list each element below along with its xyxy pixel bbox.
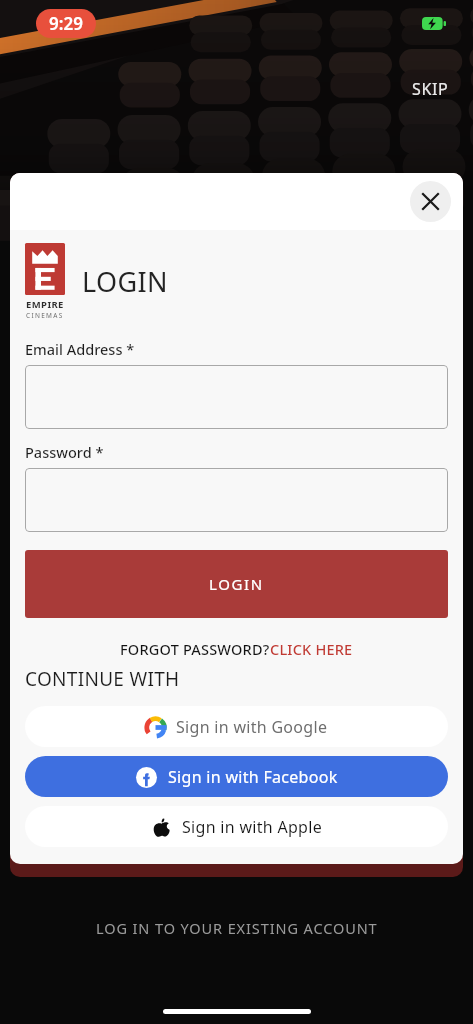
other: Battery charging: [422, 17, 446, 30]
button[interactable]: Sign in with Apple: [25, 806, 448, 847]
button[interactable]: [25, 365, 448, 429]
staticText: LOGIN: [209, 574, 264, 594]
staticText: FORGOT PASSWORD?: [120, 639, 270, 659]
button[interactable]: Sign in with Facebook: [25, 756, 448, 797]
staticText: CONTINUE WITH: [25, 666, 180, 692]
button[interactable]: SKIP: [406, 72, 455, 106]
button[interactable]: CLICK HERE: [270, 639, 353, 659]
staticText: Sign in with Google: [176, 716, 328, 738]
staticText: SKIP: [412, 78, 449, 100]
button[interactable]: [25, 468, 448, 532]
staticText: LOG IN TO YOUR EXISTING ACCOUNT: [96, 918, 378, 938]
staticText: EMPIRE: [26, 298, 64, 311]
staticText: 9:29: [49, 12, 83, 35]
staticText: CINEMAS: [26, 311, 64, 320]
staticText: Email Address *: [25, 339, 135, 359]
button[interactable]: Sign in with Google: [25, 706, 448, 747]
button[interactable]: Close: [410, 181, 451, 222]
staticText: Password *: [25, 442, 104, 462]
staticText: CLICK HERE: [270, 639, 353, 659]
staticText: Sign in with Apple: [182, 816, 322, 838]
staticText: LOGIN: [82, 263, 169, 300]
staticText: Sign in with Facebook: [168, 766, 338, 788]
button[interactable]: LOGIN: [25, 550, 448, 618]
